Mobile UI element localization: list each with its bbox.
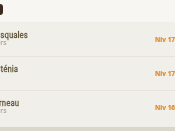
staticText: Niv 16 xyxy=(155,103,175,112)
button[interactable]: Emilio Pasquales xyxy=(0,22,175,56)
staticText: Il y a 5 jours xyxy=(0,106,7,116)
staticText: Niv 17 xyxy=(155,35,175,44)
button[interactable]: Julie Tourneau xyxy=(0,90,175,124)
button[interactable]: Nicolas Sténia xyxy=(0,56,175,90)
staticText: Niv 17 xyxy=(155,69,175,78)
staticText: Julie Tourneau xyxy=(0,98,20,109)
staticText: Emilio Pasquales xyxy=(0,30,28,41)
button[interactable]: Profile xyxy=(0,4,3,15)
staticText: Il y a 2 jours xyxy=(0,38,7,48)
staticText: Nicolas Sténia xyxy=(0,64,19,75)
